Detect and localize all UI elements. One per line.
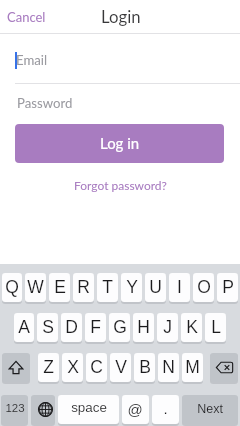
button[interactable]: F [85, 313, 106, 342]
button[interactable]: S [37, 313, 58, 342]
button[interactable]: O [193, 273, 214, 302]
staticText: V [115, 357, 127, 377]
staticText: A [18, 317, 30, 337]
staticText: Next [197, 402, 223, 416]
button[interactable]: U [145, 273, 166, 302]
staticText: M [185, 357, 200, 377]
staticText: S [42, 317, 54, 337]
staticText: . [163, 400, 168, 417]
button[interactable]: P [217, 273, 238, 302]
staticText: U [149, 277, 162, 297]
button[interactable]: space [58, 395, 119, 424]
staticText: Login [101, 6, 141, 26]
button[interactable]: B [134, 353, 155, 382]
button[interactable]: W [25, 273, 46, 302]
button[interactable]: I [169, 273, 190, 302]
staticText: Z [43, 357, 54, 377]
staticText: O [197, 277, 211, 297]
staticText: Password [17, 95, 73, 111]
staticText: H [137, 317, 150, 337]
button[interactable]: Next [182, 395, 238, 424]
button[interactable]: D [61, 313, 82, 342]
staticText: E [54, 277, 66, 297]
staticText: X [67, 357, 79, 377]
staticText: @ [127, 401, 143, 418]
button[interactable]: Cancel [7, 9, 46, 25]
staticText: L [211, 317, 221, 337]
button[interactable]: G [109, 313, 130, 342]
button[interactable]: C [86, 353, 107, 382]
staticText: P [222, 277, 234, 297]
staticText: Y [126, 277, 138, 297]
button[interactable]: Shift [2, 353, 30, 382]
staticText: G [113, 317, 127, 337]
button[interactable]: Y [121, 273, 142, 302]
staticText: Q [5, 277, 19, 297]
staticText: J [163, 317, 172, 337]
staticText: D [65, 317, 78, 337]
button[interactable]: Q [2, 273, 22, 302]
staticText: R [77, 277, 90, 297]
button[interactable]: M [182, 353, 203, 382]
staticText: K [186, 317, 198, 337]
staticText: Forgot password? [74, 178, 167, 192]
staticText: space [71, 400, 107, 415]
button[interactable]: 123 [1, 395, 28, 424]
button[interactable]: K [181, 313, 202, 342]
button[interactable]: N [158, 353, 179, 382]
button[interactable]: E [49, 273, 70, 302]
button[interactable]: J [157, 313, 178, 342]
button[interactable]: H [133, 313, 154, 342]
staticText: I [177, 277, 182, 297]
button[interactable]: Z [38, 353, 59, 382]
button[interactable]: A [14, 313, 34, 342]
button[interactable]: Forgot password? [74, 178, 167, 192]
button[interactable]: . [152, 395, 179, 424]
button[interactable]: Change keyboard [31, 395, 55, 424]
staticText: Log in [100, 134, 140, 152]
button[interactable]: X [62, 353, 83, 382]
staticText: B [139, 357, 151, 377]
staticText: W [27, 277, 44, 297]
staticText: F [90, 317, 101, 337]
button[interactable]: Backspace [210, 353, 238, 382]
staticText: Email [16, 52, 48, 68]
button[interactable]: @ [122, 395, 149, 424]
button[interactable]: T [97, 273, 118, 302]
staticText: Cancel [7, 9, 46, 25]
staticText: C [90, 357, 103, 377]
button[interactable]: V [110, 353, 131, 382]
staticText: T [102, 277, 113, 297]
staticText: N [162, 357, 175, 377]
staticText: 123 [5, 402, 25, 415]
button[interactable]: Log in [15, 124, 224, 163]
button[interactable]: L [205, 313, 226, 342]
button[interactable]: R [73, 273, 94, 302]
